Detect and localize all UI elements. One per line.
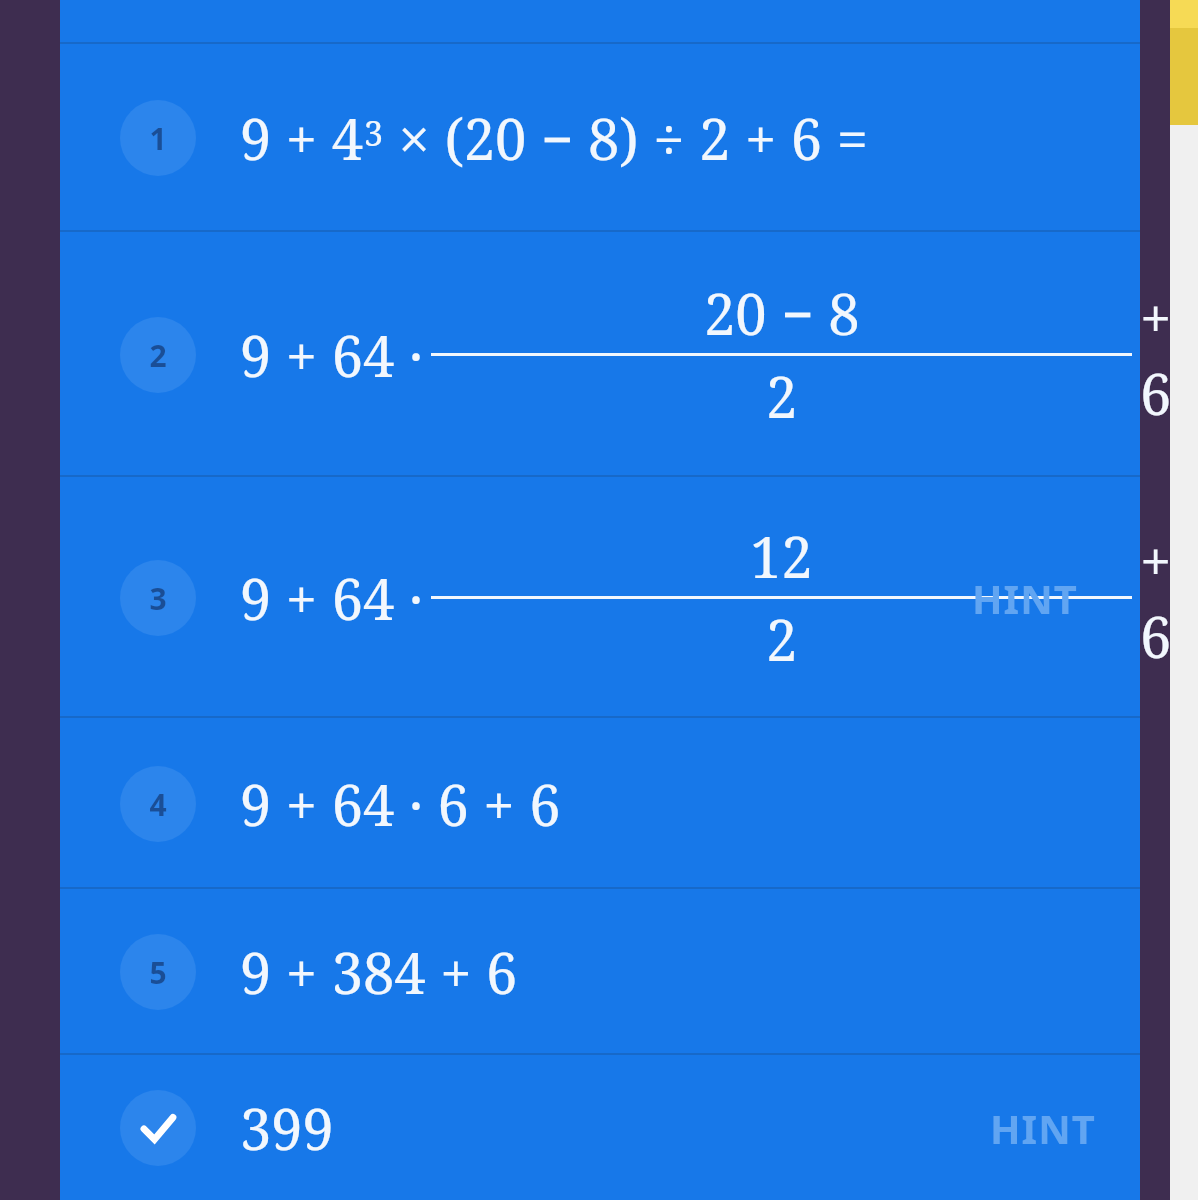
button[interactable]: 1 [120,100,196,176]
staticText: 5 [149,952,167,993]
staticText: 9 + 384 + 6 [240,934,518,1010]
button[interactable]: 4 [60,718,1140,889]
staticText: 1 [149,118,167,159]
staticText: HINT [990,1101,1096,1155]
button[interactable]: 5 [60,889,1140,1055]
button[interactable]: 3 [120,560,196,636]
staticText: 2 [149,335,167,376]
button[interactable]: Step complete [120,1090,196,1166]
staticText: 9 + 64 · [240,317,423,393]
staticText: 399 [240,1090,334,1166]
staticText: 4 [149,784,167,825]
staticText: × (20 − 8) ÷ 2 + 6 = [384,100,868,176]
staticText: HINT [972,571,1078,625]
staticText: 9 + 64 · 6 + 6 [240,766,561,842]
button[interactable]: 1 [60,44,1140,232]
button[interactable]: 4 [120,766,196,842]
button[interactable]: HINT [986,1093,1100,1163]
button[interactable]: Step complete [60,1055,1140,1200]
staticText: 9 + 4 [240,100,364,176]
staticText: 12 [750,518,813,594]
staticText: 2 [766,358,798,434]
staticText: 2 [766,601,798,677]
button[interactable]: 2 [120,317,196,393]
button[interactable]: 3 [60,477,1140,718]
staticText: 9 + 64 · [240,560,423,636]
staticText: 20 − 8 [704,275,860,351]
staticText: 3 [364,110,384,156]
button[interactable]: 2 [60,232,1140,477]
button[interactable]: 5 [120,934,196,1010]
button[interactable]: HINT [968,563,1082,633]
staticText: 3 [149,578,167,619]
